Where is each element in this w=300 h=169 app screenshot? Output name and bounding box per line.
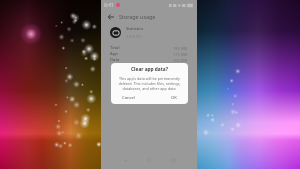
staticText: 100 MB — [173, 58, 188, 63]
button[interactable]: OK — [170, 94, 178, 102]
staticText: This app's data will be permanently dele… — [116, 76, 183, 91]
button[interactable]: Data — [110, 57, 188, 63]
staticText: Cancel — [122, 95, 136, 101]
staticText: Clear app data? — [131, 66, 168, 73]
staticText: Total — [110, 45, 120, 51]
staticText: 185 MB — [173, 46, 188, 51]
staticText: 9:41 — [104, 2, 114, 9]
button[interactable]: Back — [105, 11, 116, 22]
staticText: Data — [110, 57, 120, 63]
staticText: 175 MB — [173, 52, 188, 57]
staticText: Statistics — [126, 26, 144, 32]
staticText: 1.0.0 (1) — [126, 34, 141, 39]
button[interactable]: Cancel — [121, 94, 137, 102]
button[interactable]: App — [110, 51, 188, 57]
staticText: OK — [171, 95, 177, 101]
staticText: Storage usage — [119, 13, 156, 20]
staticText: App — [110, 51, 118, 57]
button[interactable]: Total — [110, 45, 188, 51]
